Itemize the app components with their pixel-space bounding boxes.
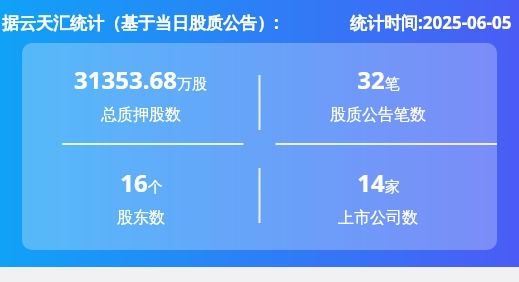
button[interactable]: 16个 xyxy=(117,166,165,228)
button[interactable]: 14家 xyxy=(338,166,418,228)
staticText: 14家 xyxy=(357,166,400,199)
staticText: 16个 xyxy=(120,166,163,199)
staticText: 上市公司数 xyxy=(338,208,418,228)
staticText: 32笔 xyxy=(357,63,400,96)
staticText: 总质押股数 xyxy=(101,105,181,125)
staticText: 据云天汇统计（基于当日股质公告）: xyxy=(2,11,279,34)
staticText: 31353.68万股 xyxy=(74,63,207,96)
staticText: 股东数 xyxy=(117,208,165,228)
button[interactable]: 32笔 xyxy=(330,63,426,125)
staticText: 统计时间:2025-06-05 xyxy=(350,11,512,34)
button[interactable]: 31353.68万股 xyxy=(74,63,207,125)
staticText: 股质公告笔数 xyxy=(330,105,426,125)
